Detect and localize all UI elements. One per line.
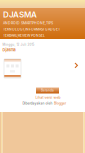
- staticText: Djasma: [2, 48, 15, 52]
- staticText: Lihat versi web: [35, 96, 60, 99]
- button[interactable]: Next post: [74, 62, 79, 68]
- staticText: TERBARU,REVIEW PONSEL: [3, 33, 45, 38]
- staticText: DJASMA: [3, 10, 37, 19]
- button[interactable]: Djasma: [2, 47, 16, 52]
- staticText: Diberdayakan oleh: [22, 101, 52, 105]
- staticText: Blogger: [54, 101, 66, 105]
- button[interactable]: Blogger: [54, 101, 66, 105]
- button[interactable]: DJASMA: [3, 10, 43, 19]
- staticText: Minggu, 12 Juli 2015: [2, 43, 34, 46]
- button[interactable]: Open post: [4, 59, 21, 78]
- staticText: ANDROID SMARTPHONE,TIPS: [3, 21, 53, 25]
- staticText: Beranda: [41, 89, 54, 92]
- staticText: TEKNOLOGI,INFORMASI GADGET: [3, 27, 60, 31]
- button[interactable]: Lihat versi web: [33, 95, 63, 99]
- button[interactable]: Beranda: [36, 87, 59, 93]
